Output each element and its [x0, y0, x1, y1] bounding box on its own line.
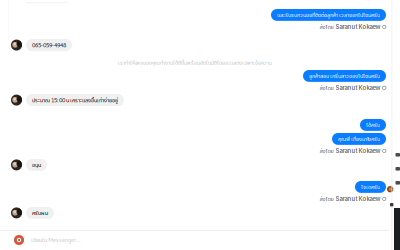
staticText: ลูกค้าสอบ เกริ่นสาวของไปโซมครับ	[309, 72, 380, 80]
button[interactable]: Open stickers	[14, 235, 24, 245]
staticText: ครับผม	[32, 209, 48, 217]
staticText: และรับรบกวนขอที่ติดต่อลูกค้า เวลาออกไปโซ…	[277, 11, 380, 19]
staticText: ส่งโดย	[320, 147, 334, 155]
staticText: ประมาณ 15:00 น เคราะแลงขึ้นเท่าง่ายอยู่	[32, 96, 118, 104]
staticText: Saranut Kokaew	[336, 195, 381, 202]
staticText: ส่งโดย	[320, 195, 334, 203]
button[interactable]: ประมาณ 15:00 น เคราะแลงขึ้นเท่าง่ายอยู่	[11, 94, 124, 106]
staticText: ได้ครับ	[366, 121, 380, 129]
button[interactable]: ครับผม	[11, 207, 54, 219]
button[interactable]: ขนุน	[11, 159, 47, 171]
button[interactable]: ได้ครับ	[360, 119, 386, 131]
staticText: เขียนใน Messenger…	[31, 236, 81, 244]
staticText: Saranut Kokaew	[336, 147, 381, 154]
button[interactable]: และรับรบกวนขอที่ติดต่อลูกค้า เวลาออกไปโซ…	[271, 9, 386, 21]
staticText: 065-059-4948	[32, 41, 66, 49]
staticText: โจเดครับ	[361, 183, 380, 191]
button[interactable]: 065-059-4948	[11, 39, 72, 51]
staticText: ขนุน	[32, 161, 41, 169]
staticText: คุณพี่ เที่ยงมาไงครับ	[338, 135, 380, 143]
staticText: Saranut Kokaew	[336, 84, 381, 91]
staticText: เราทำให้เพจของคุณทำงานได้ดีขึ้นพร้อมอัตโ…	[118, 59, 272, 66]
staticText: ส่งโดย	[320, 23, 334, 31]
staticText: Saranut Kokaew	[336, 23, 381, 30]
button[interactable]: โจเดครับ	[355, 181, 386, 193]
staticText: ส่งโดย	[320, 84, 334, 92]
button[interactable]: ลูกค้าสอบ เกริ่นสาวของไปโซมครับ	[303, 70, 386, 82]
button[interactable]: คุณพี่ เที่ยงมาไงครับ	[332, 133, 386, 145]
